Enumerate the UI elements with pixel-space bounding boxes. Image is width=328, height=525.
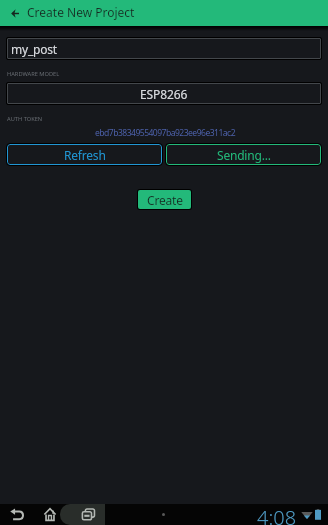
button[interactable]: Recent apps — [66, 504, 111, 525]
button[interactable]: my_post — [7, 38, 321, 59]
staticText: AUTH TOKEN — [7, 115, 43, 123]
button[interactable]: Refresh — [7, 144, 162, 165]
button[interactable]: Back — [0, 0, 26, 26]
staticText: 4:08 — [257, 504, 297, 525]
staticText: Create — [147, 192, 183, 208]
staticText: my_post — [11, 41, 57, 57]
button[interactable]: ESP8266 — [7, 83, 321, 104]
button[interactable]: Home — [33, 504, 66, 525]
staticText: Create New Project — [27, 4, 135, 20]
staticText: Sending... — [217, 147, 271, 163]
button[interactable]: Create — [138, 190, 191, 209]
staticText: Refresh — [64, 147, 106, 163]
button[interactable]: Back — [0, 504, 33, 525]
staticText: ESP8266 — [140, 86, 188, 102]
button[interactable]: Sending... — [166, 144, 321, 165]
staticText: ebd7b38349554097ba923ee96e311ac2 — [0, 127, 235, 139]
staticText: HARDWARE MODEL — [7, 70, 60, 78]
